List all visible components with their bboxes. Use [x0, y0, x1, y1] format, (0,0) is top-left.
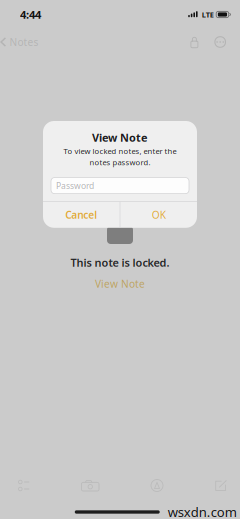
- button[interactable]: View Note: [87, 270, 153, 295]
- staticText: Cancel: [65, 208, 97, 222]
- button[interactable]: Notes: [0, 28, 44, 56]
- staticText: notes password.: [89, 157, 150, 168]
- button[interactable]: More: [209, 31, 231, 53]
- staticText: Password: [56, 180, 94, 191]
- button[interactable]: OK: [120, 202, 197, 228]
- staticText: Notes: [9, 35, 38, 49]
- staticText: To view locked notes, enter the: [63, 146, 176, 156]
- button[interactable]: Cancel: [43, 202, 120, 228]
- staticText: This note is locked.: [70, 255, 169, 270]
- button[interactable]: Camera: [72, 473, 108, 498]
- staticText: View Note: [95, 277, 145, 291]
- button[interactable]: Lock: [183, 30, 209, 54]
- button[interactable]: Markup: [142, 472, 172, 498]
- staticText: OK: [152, 208, 166, 222]
- staticText: LTE: [202, 9, 214, 20]
- staticText: 4:44: [20, 7, 41, 22]
- staticText: View Note: [92, 130, 148, 145]
- staticText: wsxdn.com: [168, 503, 237, 519]
